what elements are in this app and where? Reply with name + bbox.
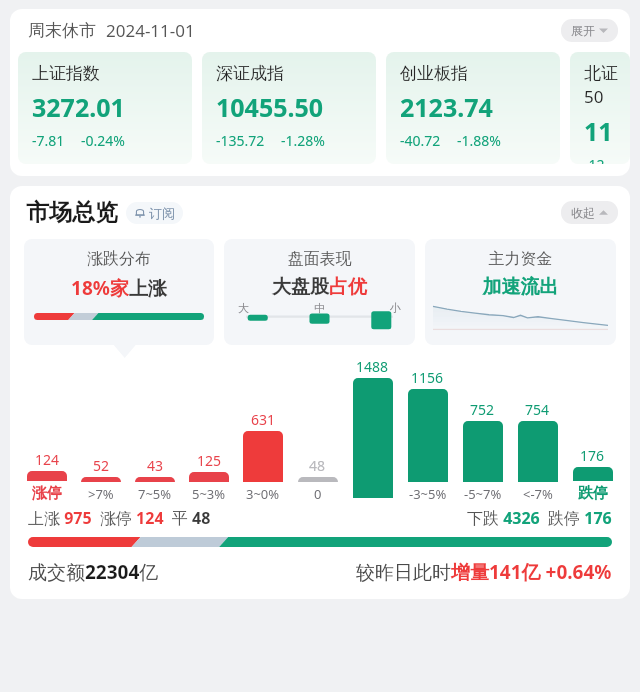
staticText: 小 [390, 301, 401, 315]
staticText: 48 [309, 456, 326, 475]
button[interactable]: 收起 [561, 201, 618, 224]
staticText: 11 [584, 114, 613, 148]
staticText: >7% [88, 485, 114, 503]
staticText: 市场总览 [26, 198, 118, 227]
staticText: 成交额22304亿 [28, 559, 159, 585]
staticText: 2123.74 [400, 90, 493, 124]
staticText: -5~7% [464, 485, 502, 503]
staticText: 涨停 [32, 484, 62, 503]
staticText: -1.28% [281, 131, 325, 150]
staticText: 周末休市 [28, 20, 96, 41]
staticText: 18%家上涨 [24, 275, 214, 301]
staticText: 展开 [571, 23, 595, 38]
staticText: 3272.01 [32, 90, 125, 124]
staticText: 7~5% [138, 485, 172, 503]
staticText: 125 [197, 451, 222, 470]
staticText: 大盘股占优 [224, 275, 415, 299]
staticText: 124 [35, 450, 60, 469]
staticText: 中 [314, 301, 325, 315]
button[interactable]: 上证指数 [18, 52, 192, 164]
staticText: 大 [238, 301, 249, 315]
staticText: 下跌 4326 跌停 176 [467, 507, 612, 529]
staticText: -12 [584, 155, 605, 164]
staticText: 加速流出 [425, 275, 616, 299]
staticText: <-7% [523, 485, 553, 503]
staticText: 752 [470, 400, 495, 419]
staticText: 10455.50 [216, 90, 324, 124]
staticText: 盘面表现 [224, 249, 415, 269]
staticText: 涨跌分布 [24, 249, 214, 269]
staticText: 2024-11-01 [106, 19, 195, 42]
staticText: 跌停 [578, 484, 608, 503]
staticText: 主力资金 [425, 249, 616, 269]
staticText: 订阅 [149, 205, 175, 221]
button[interactable]: 涨跌分布 [24, 239, 214, 345]
staticText: 上证指数 [32, 63, 100, 84]
staticText: 0 [314, 485, 322, 503]
staticText: 176 [580, 446, 605, 465]
button[interactable]: 主力资金 [425, 239, 616, 345]
staticText: 52 [93, 456, 110, 475]
staticText: 1488 [356, 357, 389, 376]
staticText: -0.24% [81, 131, 125, 150]
button[interactable]: 展开 [561, 19, 618, 42]
staticText: 上涨 975 涨停 124 平 48 [28, 507, 211, 529]
staticText: -3~5% [409, 485, 447, 503]
staticText: 北证50 [584, 63, 630, 108]
button[interactable]: 深证成指 [202, 52, 376, 164]
staticText: 5~3% [192, 485, 226, 503]
button[interactable]: 创业板指 [386, 52, 560, 164]
button[interactable]: 盘面表现 [224, 239, 415, 345]
staticText: 754 [525, 400, 550, 419]
staticText: 3~0% [246, 485, 280, 503]
staticText: 1156 [411, 368, 444, 387]
staticText: -40.72 [400, 131, 441, 150]
staticText: 收起 [571, 205, 595, 220]
button[interactable]: 北证50 [570, 52, 630, 164]
staticText: -135.72 [216, 131, 265, 150]
staticText: 631 [251, 410, 276, 429]
staticText: -1.88% [457, 131, 501, 150]
staticText: 较昨日此时增量141亿 +0.64% [356, 559, 612, 585]
staticText: 创业板指 [400, 63, 468, 84]
staticText: 深证成指 [216, 63, 284, 84]
button[interactable]: 订阅 [126, 202, 183, 224]
staticText: -7.81 [32, 131, 65, 150]
staticText: 43 [147, 456, 164, 475]
